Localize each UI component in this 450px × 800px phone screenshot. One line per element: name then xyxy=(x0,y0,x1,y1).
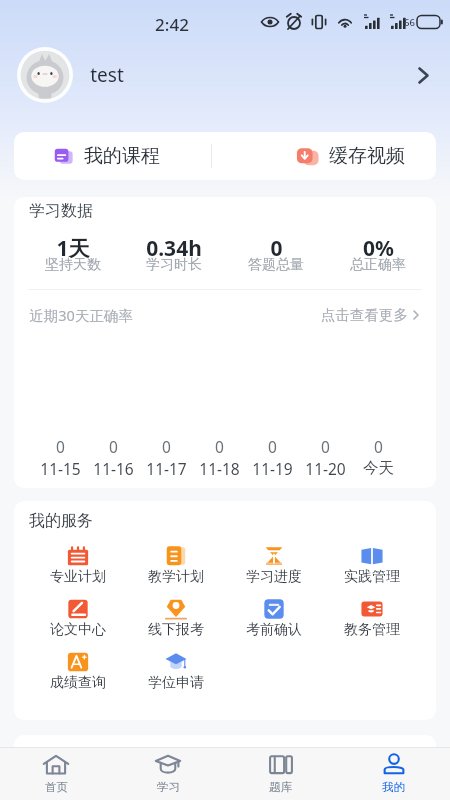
staticText: 今天 xyxy=(363,458,394,478)
staticText: 题库 xyxy=(269,780,292,794)
staticText: 66 xyxy=(404,16,415,29)
staticText: 我的课程 xyxy=(84,144,160,168)
staticText: 11-19 xyxy=(252,458,293,479)
staticText: 答题总量 xyxy=(248,256,304,274)
staticText: 0% xyxy=(363,234,394,263)
button[interactable]: 成绩查询 xyxy=(29,642,127,695)
staticText: 0 xyxy=(270,234,283,263)
staticText: 11-17 xyxy=(146,458,187,479)
staticText: 学习时长 xyxy=(146,256,202,274)
staticText: 近期30天正确率 xyxy=(29,305,133,325)
staticText: 论文中心 xyxy=(50,621,106,639)
button[interactable]: 学位申请 xyxy=(127,642,225,695)
staticText: 学位申请 xyxy=(148,674,204,692)
staticText: 11-20 xyxy=(305,458,346,479)
staticText: 1天 xyxy=(56,234,90,263)
staticText: 线下报考 xyxy=(148,621,204,639)
staticText: 我的服务 xyxy=(29,511,93,531)
staticText: 0.34h xyxy=(146,234,202,263)
button[interactable]: 教学计划 xyxy=(127,536,225,589)
staticText: 缓存视频 xyxy=(329,144,405,168)
staticText: 0 xyxy=(268,436,277,457)
staticText: 0 xyxy=(215,436,224,457)
button[interactable]: 论文中心 xyxy=(29,589,127,642)
button[interactable]: 我的 xyxy=(337,748,450,800)
staticText: 总正确率 xyxy=(350,256,406,274)
staticText: 首页 xyxy=(45,780,68,794)
button[interactable]: 我的课程 xyxy=(14,132,225,180)
staticText: 学习进度 xyxy=(246,568,302,586)
button[interactable]: 缓存视频 xyxy=(212,132,436,180)
staticText: 11-18 xyxy=(199,458,240,479)
staticText: 2:42 xyxy=(155,13,189,36)
staticText: 0 xyxy=(162,436,171,457)
button[interactable]: 专业计划 xyxy=(29,536,127,589)
staticText: 实践管理 xyxy=(344,568,400,586)
staticText: test xyxy=(90,62,124,88)
staticText: 0 xyxy=(374,436,383,457)
button[interactable]: test xyxy=(0,44,450,106)
staticText: 教务管理 xyxy=(344,621,400,639)
staticText: 0 xyxy=(321,436,330,457)
button[interactable]: 首页 xyxy=(0,748,112,800)
staticText: 我的 xyxy=(382,780,405,794)
staticText: 成绩查询 xyxy=(50,674,106,692)
button[interactable]: 实践管理 xyxy=(323,536,421,589)
button[interactable]: 学习进度 xyxy=(225,536,323,589)
staticText: 11-16 xyxy=(93,458,134,479)
staticText: 点击查看更多 xyxy=(321,306,408,324)
staticText: 坚持天数 xyxy=(45,256,101,274)
staticText: 学习 xyxy=(157,780,180,794)
button[interactable]: 题库 xyxy=(224,748,337,800)
button[interactable]: 学习 xyxy=(112,748,224,800)
staticText: 学习数据 xyxy=(29,201,93,221)
staticText: 考前确认 xyxy=(246,621,302,639)
button[interactable]: 教务管理 xyxy=(323,589,421,642)
staticText: 11-15 xyxy=(40,458,81,479)
button[interactable]: 考前确认 xyxy=(225,589,323,642)
button[interactable]: 线下报考 xyxy=(127,589,225,642)
staticText: 0 xyxy=(109,436,118,457)
button[interactable]: 近期30天正确率 xyxy=(14,297,436,332)
staticText: 教学计划 xyxy=(148,568,204,586)
staticText: 专业计划 xyxy=(50,568,106,586)
staticText: 0 xyxy=(56,436,65,457)
